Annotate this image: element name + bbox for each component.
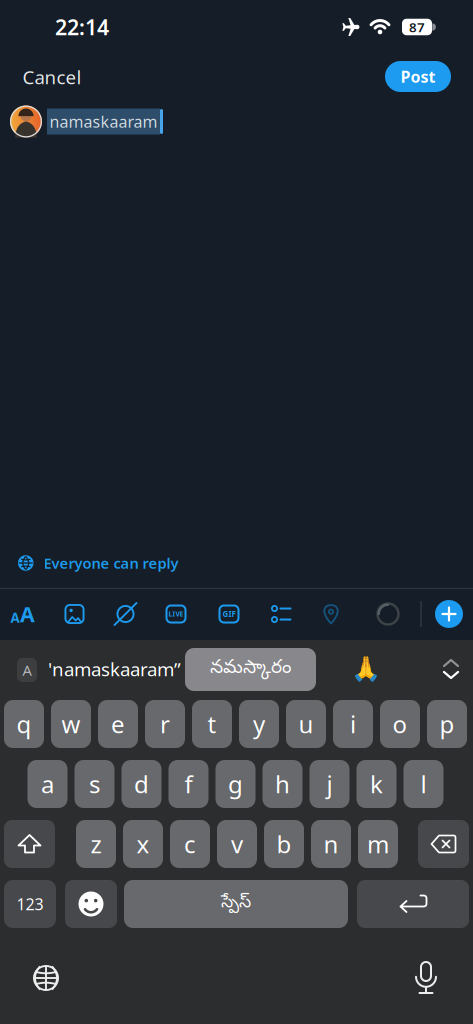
- staticText: A: [10, 609, 19, 626]
- staticText: m: [367, 828, 389, 860]
- button[interactable]: Text formatting: [6, 599, 40, 629]
- button[interactable]: m: [358, 820, 398, 868]
- staticText: w: [61, 708, 80, 740]
- button[interactable]: Add: [435, 600, 463, 628]
- button[interactable]: q: [4, 700, 44, 748]
- button[interactable]: Emoji: [65, 880, 117, 928]
- button[interactable]: a: [27, 760, 67, 808]
- staticText: z: [90, 828, 101, 860]
- staticText: q: [16, 708, 31, 740]
- button[interactable]: j: [309, 760, 349, 808]
- staticText: e: [111, 708, 125, 740]
- staticText: j: [326, 768, 332, 800]
- button[interactable]: Profile: [10, 105, 42, 137]
- button[interactable]: Next keyboard: [31, 963, 61, 993]
- button[interactable]: Shift: [4, 820, 55, 868]
- button[interactable]: GIF: [214, 599, 244, 629]
- staticText: Everyone can reply: [43, 553, 178, 573]
- button[interactable]: Post: [385, 61, 451, 92]
- button[interactable]: 123: [4, 880, 56, 928]
- staticText: a: [41, 768, 54, 800]
- button[interactable]: n: [311, 820, 351, 868]
- staticText: namaskaaram: [49, 111, 157, 132]
- button[interactable]: నమస్కారం: [185, 648, 316, 691]
- staticText: A: [20, 600, 35, 628]
- button[interactable]: v: [217, 820, 257, 868]
- button[interactable]: Tag location: [316, 599, 346, 629]
- staticText: 'namaskaaram”: [48, 657, 181, 681]
- button[interactable]: Cancel: [18, 60, 85, 94]
- staticText: 123: [16, 893, 43, 915]
- staticText: Cancel: [22, 65, 81, 89]
- staticText: స్పేస్: [221, 893, 251, 915]
- staticText: n: [323, 828, 338, 860]
- button[interactable]: r: [145, 700, 185, 748]
- button[interactable]: స్పేస్: [124, 880, 348, 928]
- button[interactable]: d: [121, 760, 161, 808]
- button[interactable]: p: [427, 700, 467, 748]
- staticText: GIF: [222, 609, 235, 619]
- button[interactable]: c: [170, 820, 210, 868]
- staticText: l: [420, 768, 426, 800]
- staticText: k: [370, 768, 383, 800]
- button[interactable]: i: [333, 700, 373, 748]
- button[interactable]: y: [239, 700, 279, 748]
- staticText: నమస్కారం: [210, 657, 291, 682]
- button[interactable]: Collapse suggestions: [440, 655, 462, 683]
- staticText: p: [439, 708, 454, 740]
- button[interactable]: 'namaskaaram”: [48, 657, 182, 681]
- staticText: c: [184, 828, 196, 860]
- button[interactable]: u: [286, 700, 326, 748]
- button[interactable]: Delete: [418, 820, 469, 868]
- staticText: r: [160, 708, 170, 740]
- button[interactable]: Dictation: [415, 962, 437, 994]
- staticText: s: [89, 768, 100, 800]
- staticText: d: [134, 768, 149, 800]
- staticText: y: [253, 708, 265, 740]
- staticText: v: [231, 828, 243, 860]
- button[interactable]: g: [215, 760, 255, 808]
- staticText: h: [275, 768, 290, 800]
- button[interactable]: l: [403, 760, 443, 808]
- button[interactable]: t: [192, 700, 232, 748]
- button[interactable]: Everyone can reply: [0, 548, 473, 578]
- staticText: 🙏: [351, 655, 381, 683]
- staticText: u: [298, 708, 313, 740]
- staticText: g: [228, 768, 243, 800]
- staticText: LIVE: [168, 610, 183, 618]
- button[interactable]: x: [123, 820, 163, 868]
- staticText: t: [207, 708, 216, 740]
- button[interactable]: s: [74, 760, 114, 808]
- staticText: f: [184, 768, 192, 800]
- staticText: x: [136, 828, 149, 860]
- button[interactable]: f: [168, 760, 208, 808]
- button[interactable]: e: [98, 700, 138, 748]
- button[interactable]: Folded hands emoji: [351, 655, 381, 683]
- button[interactable]: Return: [357, 880, 469, 928]
- button[interactable]: h: [262, 760, 302, 808]
- staticText: A: [22, 660, 31, 680]
- staticText: i: [350, 708, 356, 740]
- staticText: 87: [409, 18, 425, 36]
- button[interactable]: Live video: [161, 599, 191, 629]
- button[interactable]: Autofill: [17, 658, 37, 682]
- button[interactable]: w: [51, 700, 91, 748]
- button[interactable]: Photos: [59, 599, 89, 629]
- staticText: Post: [400, 66, 435, 87]
- staticText: b: [276, 828, 291, 860]
- staticText: o: [392, 708, 407, 740]
- button[interactable]: Poll: [265, 599, 295, 629]
- button[interactable]: b: [264, 820, 304, 868]
- button[interactable]: k: [356, 760, 396, 808]
- button[interactable]: z: [76, 820, 116, 868]
- staticText: 22:14: [55, 13, 109, 41]
- button[interactable]: o: [380, 700, 420, 748]
- button[interactable]: Go Live: [110, 599, 140, 629]
